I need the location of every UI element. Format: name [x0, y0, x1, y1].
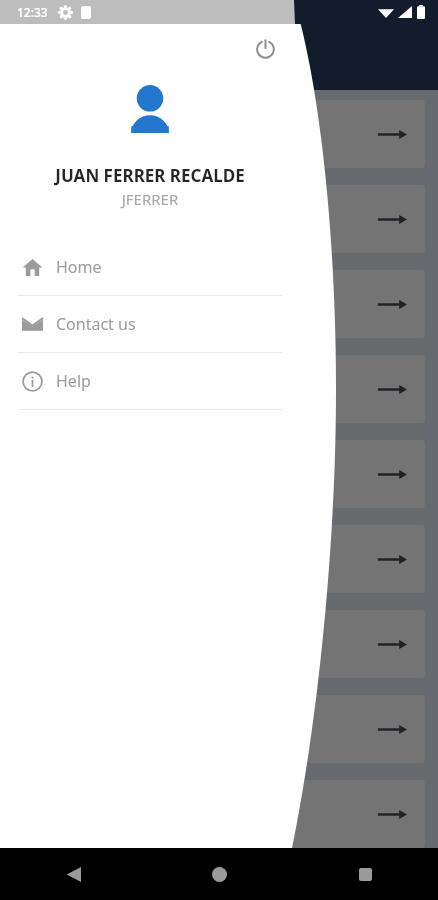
- button[interactable]: MIS RECIBOS: [13, 185, 425, 253]
- staticText: JUAN FERRER RECALDE: [0, 164, 300, 187]
- staticText: 12:33: [17, 4, 48, 20]
- button[interactable]: MIS FACTURAS: [13, 355, 425, 423]
- button[interactable]: Home: [0, 239, 300, 295]
- staticText: Help: [56, 370, 91, 392]
- button[interactable]: Back: [51, 852, 95, 896]
- button[interactable]: MIS TRAMITES: [13, 695, 425, 763]
- button[interactable]: Contact us: [0, 296, 300, 352]
- button[interactable]: Recents: [343, 852, 387, 896]
- button[interactable]: MIS PAGOS: [13, 440, 425, 508]
- button[interactable]: MIS CONTRATOS: [13, 270, 425, 338]
- staticText: MIS LECTURAS: [29, 635, 377, 654]
- staticText: MIS CONTRATOS: [29, 295, 377, 314]
- staticText: MI CONSUMO: [29, 805, 377, 824]
- button[interactable]: Help: [0, 353, 300, 409]
- button[interactable]: MIS LECTURAS: [13, 610, 425, 678]
- staticText: MIS RECIBOS: [29, 210, 377, 229]
- staticText: Home: [56, 256, 102, 278]
- button[interactable]: MI CONSUMO: [13, 780, 425, 848]
- staticText: MIS TRAMITES: [29, 720, 377, 739]
- button[interactable]: MIS DATOS: [13, 100, 425, 168]
- staticText: MIS PAGOS: [29, 465, 377, 484]
- staticText: JFERRER: [0, 189, 300, 209]
- staticText: MIS AVISOS: [29, 550, 377, 569]
- staticText: MIS DATOS: [29, 125, 377, 144]
- button[interactable]: Home: [197, 852, 241, 896]
- staticText: MIS FACTURAS: [29, 380, 377, 399]
- button[interactable]: Log out: [247, 30, 283, 66]
- button[interactable]: MIS AVISOS: [13, 525, 425, 593]
- staticText: Contact us: [56, 313, 136, 335]
